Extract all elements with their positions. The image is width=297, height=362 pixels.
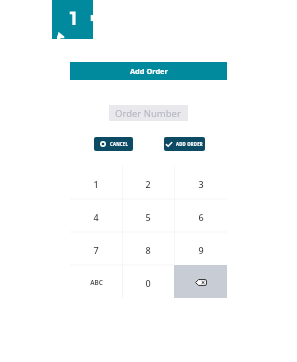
staticText: ADD ORDER xyxy=(176,141,203,147)
staticText: CANCEL xyxy=(110,141,128,147)
button[interactable]: 2 xyxy=(122,166,174,199)
staticText: 2 xyxy=(145,178,151,190)
button[interactable]: 9 xyxy=(174,232,227,265)
button[interactable]: 7 xyxy=(70,232,122,265)
staticText: ABC xyxy=(90,278,103,287)
button[interactable]: 4 xyxy=(70,199,122,232)
button[interactable]: CANCEL xyxy=(94,137,133,151)
button[interactable]: ABC xyxy=(70,265,122,298)
button[interactable]: 0 xyxy=(122,265,174,298)
staticText: 4 xyxy=(93,211,99,223)
staticText: 9 xyxy=(198,244,204,256)
staticText: 8 xyxy=(145,244,151,256)
button[interactable]: Order Number xyxy=(109,105,188,121)
button[interactable]: 5 xyxy=(122,199,174,232)
button[interactable]: Add Order xyxy=(70,62,227,80)
button[interactable]: Backspace xyxy=(174,265,227,298)
staticText: 6 xyxy=(198,211,204,223)
button[interactable]: 8 xyxy=(122,232,174,265)
staticText: 5 xyxy=(145,211,151,223)
button[interactable]: 3 xyxy=(174,166,227,199)
staticText: 3 xyxy=(198,178,204,190)
button[interactable]: 6 xyxy=(174,199,227,232)
button[interactable]: ADD ORDER xyxy=(164,137,205,151)
button[interactable]: 1 xyxy=(70,166,122,199)
staticText: Add Order xyxy=(130,66,168,76)
staticText: Order Number xyxy=(115,107,181,120)
staticText: 7 xyxy=(93,244,99,256)
staticText: 0 xyxy=(145,277,151,289)
staticText: 1 xyxy=(93,178,99,190)
